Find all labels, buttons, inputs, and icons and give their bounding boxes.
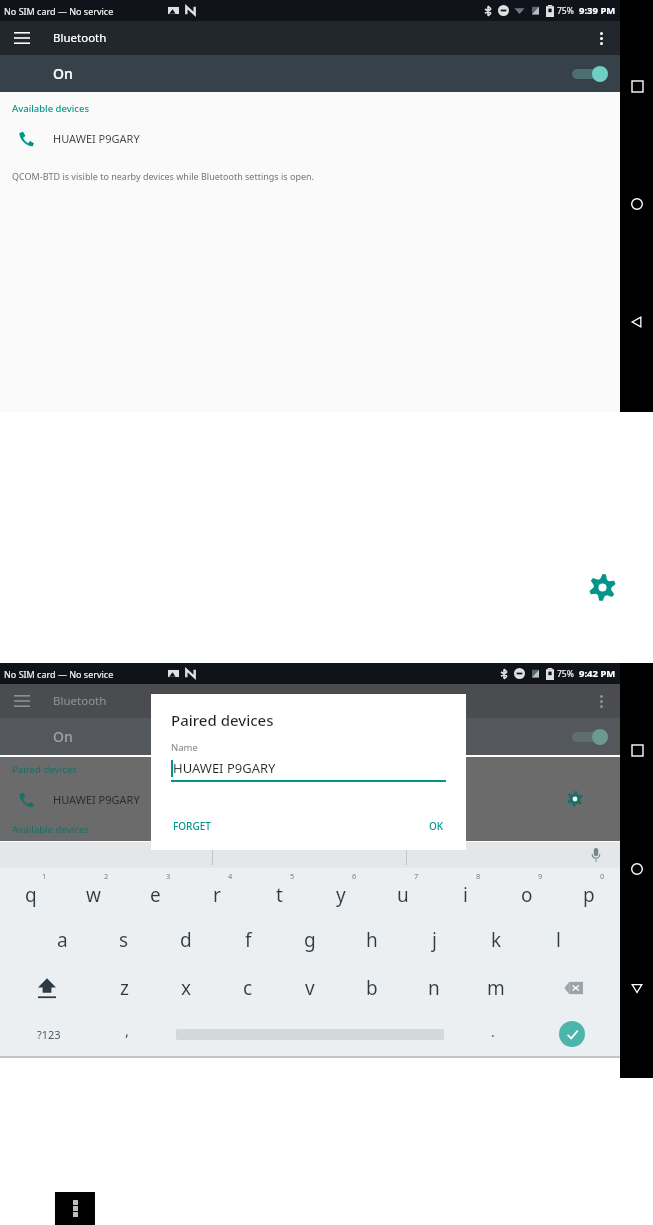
button[interactable]: Space — [158, 1012, 462, 1056]
staticText: b — [366, 975, 378, 1001]
staticText: 75% — [557, 5, 574, 17]
staticText: v — [305, 975, 315, 1001]
button[interactable]: 7 — [372, 868, 434, 916]
button[interactable]: f — [217, 916, 279, 964]
button[interactable]: n — [403, 964, 465, 1012]
staticText: k — [491, 927, 502, 953]
button[interactable]: More options — [586, 686, 616, 716]
button[interactable]: More options — [586, 23, 616, 53]
button[interactable]: 5 — [248, 868, 310, 916]
staticText: h — [366, 927, 378, 953]
button[interactable]: b — [341, 964, 403, 1012]
button[interactable]: 1 — [0, 868, 62, 916]
staticText: 0 — [600, 871, 605, 881]
staticText: 75% — [557, 668, 574, 680]
staticText: 5 — [290, 871, 295, 881]
button[interactable]: Recents — [622, 71, 652, 101]
staticText: Paired devices — [171, 710, 274, 730]
staticText: l — [556, 927, 561, 953]
button[interactable]: h — [341, 916, 403, 964]
button[interactable]: HUAWEI P9GARY — [0, 120, 620, 156]
staticText: u — [397, 882, 409, 908]
button[interactable]: 8 — [434, 868, 496, 916]
staticText: q — [25, 882, 37, 908]
button[interactable]: m — [465, 964, 527, 1012]
staticText: On — [53, 64, 73, 83]
staticText: On — [53, 727, 73, 746]
staticText: FORGET — [173, 819, 211, 833]
staticText: 9:39 PM — [579, 4, 616, 17]
button[interactable]: 0 — [558, 868, 620, 916]
button[interactable]: Voice input — [586, 845, 606, 865]
staticText: n — [428, 975, 440, 1001]
button[interactable]: Shift — [0, 964, 93, 1012]
staticText: s — [119, 927, 129, 953]
button[interactable]: HUAWEI P9GARY — [0, 781, 620, 817]
button[interactable]: k — [465, 916, 527, 964]
button[interactable]: Done — [523, 1012, 620, 1056]
button[interactable]: On — [0, 718, 620, 755]
staticText: 2 — [104, 871, 109, 881]
button[interactable]: c — [217, 964, 279, 1012]
staticText: Bluetooth — [53, 30, 107, 46]
staticText: 9 — [538, 871, 543, 881]
staticText: Paired devices — [12, 763, 77, 776]
button[interactable]: On — [0, 55, 620, 92]
button[interactable]: 6 — [310, 868, 372, 916]
button[interactable]: Settings — [586, 571, 618, 603]
staticText: a — [57, 927, 68, 953]
button[interactable]: . — [462, 1012, 523, 1056]
staticText: 7 — [414, 871, 419, 881]
staticText: p — [583, 882, 595, 908]
button[interactable]: d — [155, 916, 217, 964]
button[interactable]: ?123 — [0, 1012, 97, 1056]
staticText: Bluetooth — [53, 693, 107, 709]
staticText: j — [432, 927, 437, 953]
button[interactable]: Navigation menu — [8, 24, 36, 52]
button[interactable]: Navigation menu — [8, 687, 36, 715]
button[interactable]: Backspace — [527, 964, 620, 1012]
button[interactable]: Home — [622, 854, 652, 884]
staticText: No SIM card — No service — [4, 5, 114, 17]
staticText: w — [86, 882, 101, 908]
button[interactable]: g — [279, 916, 341, 964]
staticText: 9:42 PM — [579, 667, 616, 680]
button[interactable]: z — [93, 964, 155, 1012]
staticText: HUAWEI P9GARY — [53, 131, 140, 146]
staticText: c — [243, 975, 253, 1001]
button[interactable]: v — [279, 964, 341, 1012]
button[interactable]: Home — [622, 189, 652, 219]
button[interactable]: 9 — [496, 868, 558, 916]
button[interactable]: 2 — [62, 868, 124, 916]
button[interactable]: a — [31, 916, 93, 964]
staticText: Available devices — [12, 823, 90, 836]
button[interactable]: x — [155, 964, 217, 1012]
button[interactable]: OK — [427, 816, 446, 836]
button[interactable]: More options — [55, 1192, 95, 1225]
button[interactable]: Back — [622, 973, 652, 1003]
button[interactable]: Back — [622, 307, 652, 337]
button[interactable]: s — [93, 916, 155, 964]
staticText: o — [521, 882, 533, 908]
staticText: Name — [171, 741, 198, 754]
button[interactable]: j — [403, 916, 465, 964]
button[interactable]: Device settings — [562, 786, 588, 812]
button[interactable]: 3 — [124, 868, 186, 916]
button[interactable]: , — [97, 1012, 158, 1056]
staticText: i — [463, 882, 468, 908]
staticText: 6 — [352, 871, 357, 881]
staticText: d — [180, 927, 192, 953]
staticText: y — [336, 882, 346, 908]
staticText: g — [304, 927, 316, 953]
staticText: e — [150, 882, 161, 908]
button[interactable]: Recents — [622, 735, 652, 765]
button[interactable]: 4 — [186, 868, 248, 916]
staticText: Available devices — [12, 102, 90, 115]
staticText: r — [213, 882, 221, 908]
staticText: ?123 — [37, 1027, 61, 1042]
staticText: HUAWEI P9GARY — [173, 759, 276, 777]
staticText: 3 — [166, 871, 171, 881]
button[interactable]: FORGET — [171, 816, 213, 836]
staticText: x — [181, 975, 192, 1001]
button[interactable]: l — [527, 916, 589, 964]
